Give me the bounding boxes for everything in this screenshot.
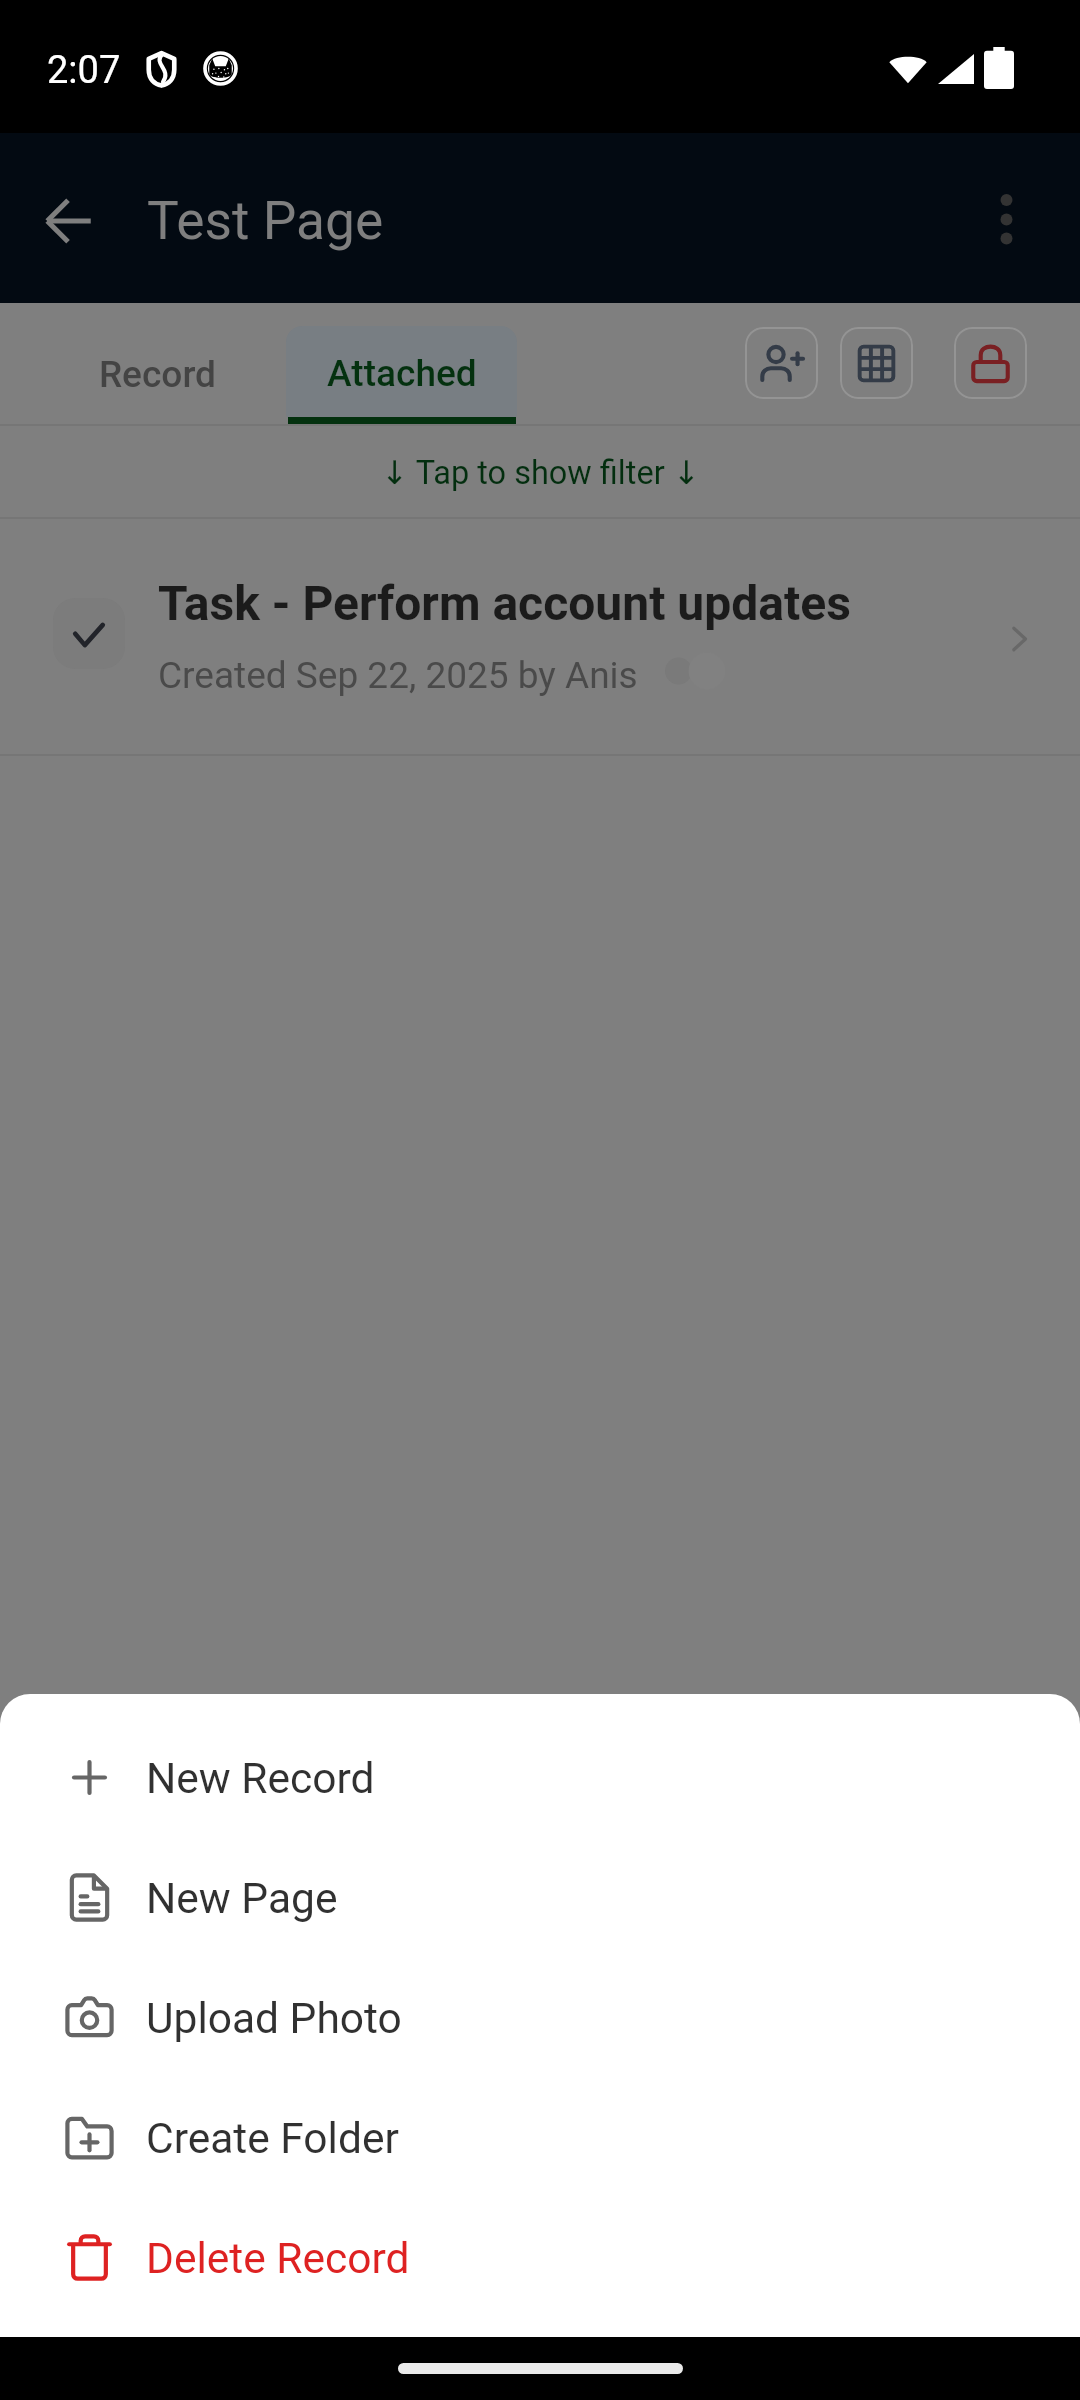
staticText: New Page	[146, 1874, 338, 1924]
staticText: ↓ Tap to show filter ↓	[381, 454, 700, 492]
button[interactable]: Attached	[286, 326, 517, 420]
button[interactable]: Lock	[954, 327, 1027, 399]
staticText: Attached	[327, 352, 477, 395]
staticText: Upload Photo	[146, 1994, 402, 2044]
button[interactable]: Back	[25, 177, 113, 265]
staticText: 2:07	[47, 48, 121, 93]
staticText: Create Folder	[146, 2114, 399, 2164]
button[interactable]: More options	[962, 175, 1050, 263]
button[interactable]: Delete Record	[0, 2199, 1080, 2319]
button[interactable]: Upload Photo	[0, 1959, 1080, 2079]
staticText: Record	[99, 353, 216, 396]
staticText: Task - Perform account updates	[158, 575, 851, 631]
button[interactable]: Grid view	[840, 327, 913, 399]
button[interactable]: ↓ Tap to show filter ↓	[0, 426, 1080, 517]
staticText: Created Sep 22, 2025 by Anis	[158, 654, 638, 697]
staticText: New Record	[146, 1754, 375, 1804]
staticText: Delete Record	[146, 2234, 410, 2284]
button[interactable]: Record	[31, 303, 283, 424]
button[interactable]: Add member	[745, 327, 818, 399]
button[interactable]: New Record	[0, 1719, 1080, 1839]
staticText: Test Page	[147, 190, 384, 252]
button[interactable]: Task - Perform account updates	[0, 519, 1080, 754]
button[interactable]: New Page	[0, 1839, 1080, 1959]
button[interactable]: Create Folder	[0, 2079, 1080, 2199]
